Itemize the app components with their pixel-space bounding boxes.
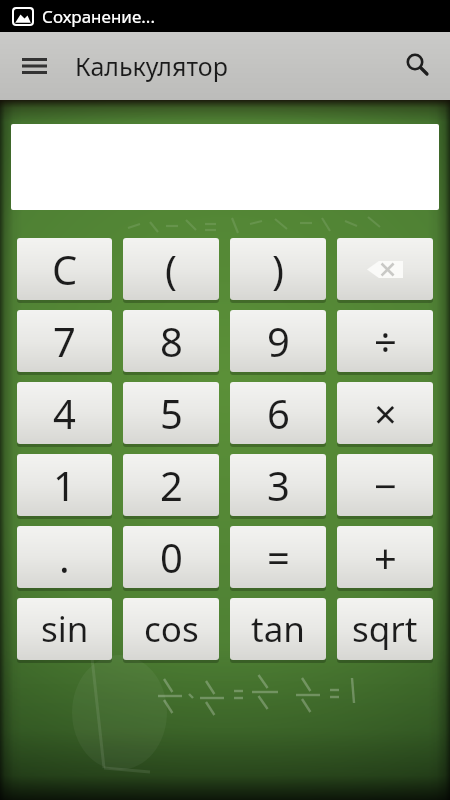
staticText: − bbox=[374, 458, 397, 512]
button[interactable]: ) bbox=[230, 238, 326, 300]
staticText: + bbox=[374, 530, 397, 584]
staticText: 7 bbox=[53, 314, 76, 368]
button[interactable]: − bbox=[337, 454, 433, 516]
button[interactable]: × bbox=[337, 382, 433, 444]
staticText: 1 bbox=[53, 458, 76, 512]
button[interactable]: tan bbox=[230, 598, 326, 660]
button[interactable]: 6 bbox=[230, 382, 326, 444]
staticText: × bbox=[374, 386, 397, 440]
staticText: ( bbox=[165, 242, 177, 296]
button[interactable]: sqrt bbox=[337, 598, 433, 660]
button[interactable]: 5 bbox=[123, 382, 219, 444]
staticText: ÷ bbox=[374, 314, 397, 368]
staticText: . bbox=[59, 530, 70, 584]
button[interactable]: ÷ bbox=[337, 310, 433, 372]
button[interactable]: 2 bbox=[123, 454, 219, 516]
button[interactable]: cos bbox=[123, 598, 219, 660]
staticText: 5 bbox=[160, 386, 183, 440]
staticText: 8 bbox=[160, 314, 183, 368]
button[interactable]: . bbox=[17, 526, 112, 588]
button[interactable]: 4 bbox=[17, 382, 112, 444]
button[interactable]: 0 bbox=[123, 526, 219, 588]
staticText: ) bbox=[272, 242, 284, 296]
button[interactable]: sin bbox=[17, 598, 112, 660]
staticText: = bbox=[267, 530, 290, 584]
staticText: sin bbox=[41, 605, 89, 653]
staticText: tan bbox=[251, 605, 305, 653]
button[interactable]: = bbox=[230, 526, 326, 588]
button[interactable]: 1 bbox=[17, 454, 112, 516]
staticText: 2 bbox=[160, 458, 183, 512]
staticText: 6 bbox=[267, 386, 290, 440]
staticText: 4 bbox=[53, 386, 76, 440]
button[interactable]: 3 bbox=[230, 454, 326, 516]
button[interactable]: C bbox=[17, 238, 112, 300]
staticText: cos bbox=[144, 605, 199, 653]
button[interactable]: 8 bbox=[123, 310, 219, 372]
staticText: 3 bbox=[267, 458, 290, 512]
button[interactable]: + bbox=[337, 526, 433, 588]
button[interactable] bbox=[337, 238, 433, 300]
staticText: 9 bbox=[267, 314, 290, 368]
button[interactable]: 9 bbox=[230, 310, 326, 372]
staticText: sqrt bbox=[352, 605, 418, 653]
button[interactable] bbox=[390, 32, 450, 100]
button[interactable]: 7 bbox=[17, 310, 112, 372]
staticText: Калькулятор bbox=[75, 49, 228, 83]
staticText: C bbox=[52, 242, 78, 296]
staticText: Сохранение... bbox=[42, 5, 155, 28]
button[interactable] bbox=[0, 32, 62, 100]
button[interactable]: ( bbox=[123, 238, 219, 300]
staticText: 0 bbox=[160, 530, 183, 584]
